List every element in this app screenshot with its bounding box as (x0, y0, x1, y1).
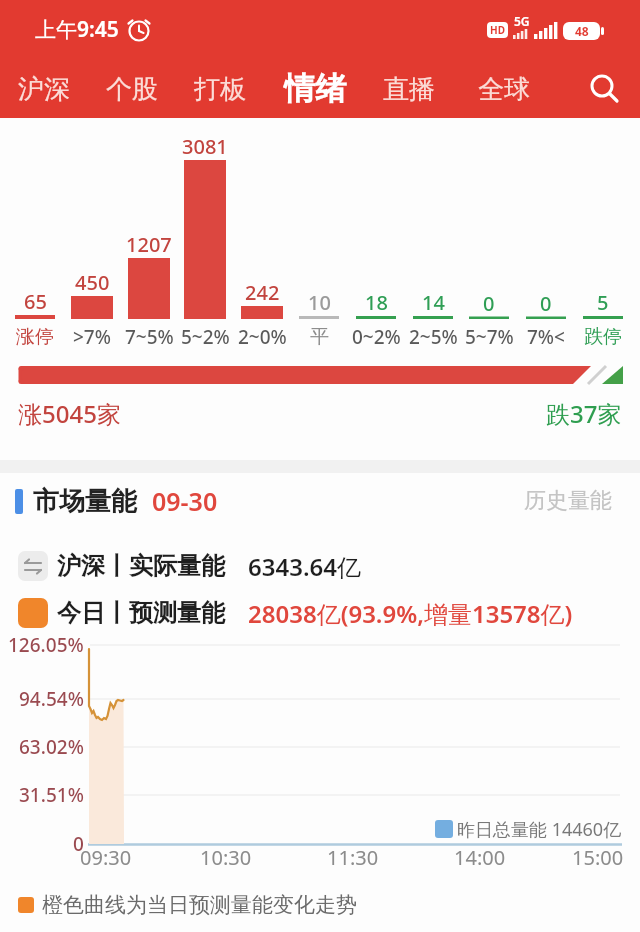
staticText: 18 (365, 289, 388, 316)
button[interactable]: 个股 (90, 66, 174, 112)
staticText: 个股 (106, 73, 158, 106)
staticText: 6343.64亿 (248, 550, 361, 583)
staticText: 242 (245, 279, 280, 306)
staticText: 126.05% (8, 632, 84, 658)
button[interactable] (580, 64, 628, 112)
button[interactable]: 沪深 (2, 66, 86, 112)
staticText: 10:30 (200, 844, 252, 871)
staticText: 1207 (126, 231, 172, 258)
staticText: 昨日总量能 14460亿 (457, 817, 622, 842)
staticText: 0 (73, 831, 84, 857)
staticText: 09:30 (80, 844, 132, 871)
staticText: 94.54% (19, 686, 84, 712)
staticText: 橙色曲线为当日预测量能变化走势 (42, 892, 357, 918)
staticText: >7% (73, 324, 111, 350)
staticText: 上午9:45 (35, 15, 119, 44)
staticText: 历史量能 (524, 487, 612, 515)
staticText: 直播 (383, 73, 435, 106)
staticText: 市场量能 (33, 485, 137, 518)
staticText: 450 (75, 269, 110, 296)
staticText: 沪深 (18, 73, 70, 106)
staticText: 全球 (478, 73, 530, 106)
staticText: 11:30 (327, 844, 379, 871)
staticText: 65 (24, 288, 47, 315)
button[interactable]: 情绪 (269, 64, 361, 112)
staticText: 跌停 (584, 325, 622, 349)
staticText: 打板 (194, 73, 246, 106)
staticText: 28038亿(93.9%,增量13578亿) (248, 597, 573, 630)
staticText: 跌37家 (546, 397, 622, 430)
staticText: 5 (597, 289, 609, 316)
staticText: 5~2% (181, 324, 230, 350)
staticText: 5~7% (465, 324, 514, 350)
staticText: 5G (514, 13, 530, 29)
staticText: 涨停 (16, 325, 54, 349)
staticText: 今日丨预测量能 (57, 598, 225, 628)
button[interactable]: 全球 (462, 66, 546, 112)
staticText: 2~0% (238, 324, 287, 350)
staticText: 63.02% (19, 734, 84, 760)
staticText: 09-30 (152, 484, 218, 518)
staticText: 3081 (182, 133, 228, 160)
staticText: 0~2% (352, 324, 401, 350)
staticText: 0 (483, 290, 495, 317)
staticText: 48 (575, 23, 589, 39)
staticText: 沪深丨实际量能 (57, 551, 225, 581)
staticText: HD (490, 23, 505, 37)
staticText: 2~5% (409, 324, 458, 350)
button[interactable]: 历史量能 (482, 481, 622, 521)
staticText: 14:00 (454, 844, 506, 871)
staticText: 0 (540, 290, 552, 317)
staticText: 15:00 (572, 844, 624, 871)
staticText: 14 (422, 289, 445, 316)
staticText: 情绪 (284, 69, 346, 108)
button[interactable]: 打板 (178, 66, 262, 112)
staticText: 涨5045家 (18, 397, 121, 430)
button[interactable]: 直播 (367, 66, 451, 112)
staticText: 10 (308, 289, 331, 316)
staticText: 31.51% (19, 782, 84, 808)
staticText: 平 (310, 325, 329, 349)
staticText: 7%< (527, 324, 565, 350)
staticText: 7~5% (125, 324, 174, 350)
